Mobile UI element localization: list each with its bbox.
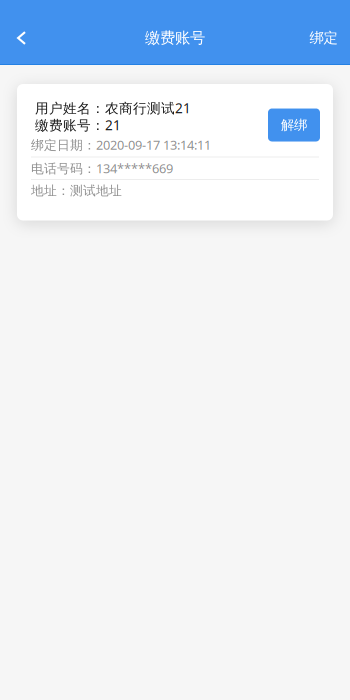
staticText: 用户姓名：农商行测试21 <box>35 99 191 117</box>
button[interactable]: Back <box>0 11 50 65</box>
staticText: 缴费账号 <box>145 28 205 48</box>
staticText: 解绑 <box>281 117 307 133</box>
staticText: 绑定日期：2020-09-17 13:14:11 <box>31 136 211 153</box>
staticText: 电话号码：134*****669 <box>31 159 173 177</box>
button[interactable]: 绑定 <box>296 11 350 65</box>
staticText: 绑定 <box>309 29 337 47</box>
staticText: 地址：测试地址 <box>31 183 122 199</box>
button[interactable]: 解绑 <box>268 108 320 141</box>
staticText: 缴费账号：21 <box>35 116 121 134</box>
